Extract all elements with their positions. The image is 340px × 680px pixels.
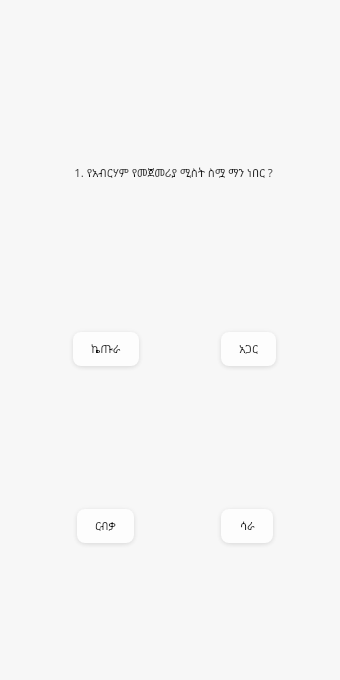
button[interactable]: ርብቃ — [77, 509, 134, 543]
staticText: 1. የአብርሃም የመጀመሪያ ሚስት ስሟ ማን ነበር ? — [20, 165, 327, 181]
button[interactable]: ኬጡራ — [73, 332, 139, 366]
staticText: አጋር — [239, 341, 258, 357]
button[interactable]: ሳራ — [221, 509, 273, 543]
staticText: ርብቃ — [95, 518, 116, 534]
staticText: ኬጡራ — [91, 341, 121, 357]
button[interactable]: አጋር — [221, 332, 276, 366]
staticText: ሳራ — [240, 518, 255, 534]
